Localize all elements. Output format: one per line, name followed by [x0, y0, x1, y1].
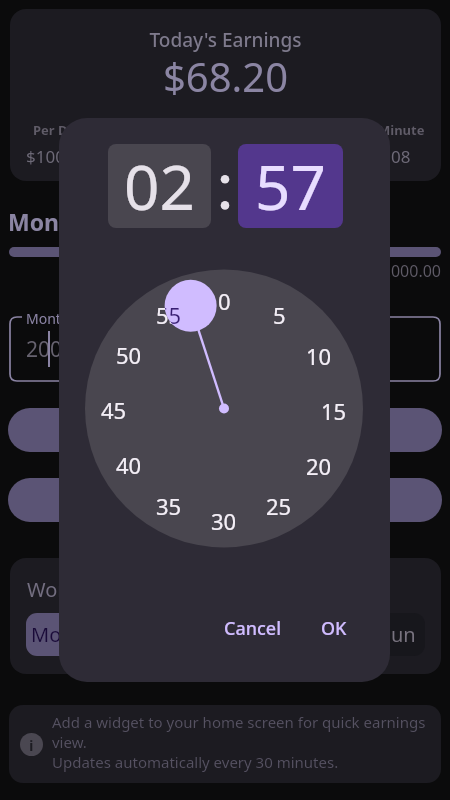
- staticText: 25: [266, 491, 292, 517]
- staticText: 45: [101, 395, 127, 421]
- staticText: Updates automatically every 30 minutes.: [52, 752, 339, 772]
- button[interactable]: 02: [108, 144, 211, 228]
- staticText: $100.00: [26, 145, 89, 168]
- staticText: $68.20: [10, 49, 441, 103]
- staticText: i: [29, 735, 34, 755]
- staticText: 5: [273, 300, 286, 326]
- staticText: 20: [306, 451, 332, 477]
- button[interactable]: Set Work Hours: [8, 478, 442, 522]
- staticText: 57: [255, 144, 326, 228]
- staticText: 30: [211, 506, 237, 532]
- staticText: view.: [52, 732, 87, 752]
- staticText: Monthly: [8, 206, 104, 237]
- staticText: Per Day: [33, 121, 83, 139]
- staticText: Set Work Hours: [166, 489, 285, 511]
- staticText: 50: [116, 340, 142, 366]
- staticText: $12.50: [194, 145, 248, 168]
- button[interactable]: Mon: [26, 613, 79, 656]
- button[interactable]: Sat: [313, 613, 367, 656]
- staticText: $2000.00: [0, 260, 441, 282]
- staticText: 40: [116, 450, 142, 476]
- staticText: 10: [306, 341, 332, 367]
- staticText: 55: [156, 300, 182, 326]
- staticText: Cancel: [224, 616, 282, 641]
- staticText: Thu: [206, 621, 242, 648]
- button[interactable]: Sun: [371, 613, 425, 656]
- staticText: Work Days: [27, 576, 128, 603]
- staticText: Sun: [380, 621, 416, 648]
- staticText: Mon: [31, 621, 74, 648]
- button[interactable]: Thu: [197, 613, 251, 656]
- staticText: 55: [165, 300, 182, 326]
- staticText: 15: [321, 396, 347, 422]
- staticText: 0: [218, 286, 231, 312]
- button[interactable]: OK: [314, 607, 354, 650]
- staticText: $0.08: [367, 145, 411, 168]
- staticText: Monthly Goal: [26, 309, 115, 328]
- staticText: Per Minute: [353, 121, 425, 139]
- staticText: OK: [321, 616, 347, 641]
- staticText: Today's Earnings: [10, 27, 441, 53]
- staticText: 200: [26, 335, 63, 364]
- button[interactable]: Cancel: [217, 607, 289, 650]
- other: Information: [20, 733, 43, 756]
- staticText: 02: [124, 144, 195, 228]
- staticText: Add a widget to your home screen for qui…: [52, 712, 426, 732]
- button[interactable]: 57: [238, 144, 343, 228]
- staticText: Fri: [270, 621, 294, 648]
- staticText: Sat: [325, 621, 355, 648]
- button[interactable]: Save Goal: [8, 408, 442, 452]
- button[interactable]: Fri: [255, 613, 309, 656]
- staticText: 35: [156, 491, 182, 517]
